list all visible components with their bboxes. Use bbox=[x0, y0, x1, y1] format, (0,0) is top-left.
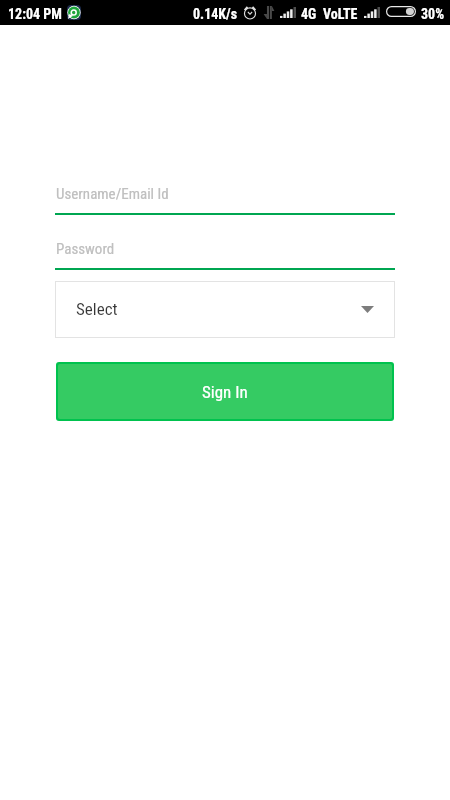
staticText: 4G bbox=[301, 6, 317, 22]
button[interactable]: Password bbox=[55, 235, 395, 270]
staticText: Sign In bbox=[202, 382, 248, 402]
staticText: 0.14K/s bbox=[193, 6, 238, 22]
button[interactable]: Select bbox=[55, 281, 395, 338]
staticText: 30% bbox=[421, 6, 445, 22]
staticText: Username/Email Id bbox=[56, 185, 169, 203]
other: WhatsApp notification bbox=[67, 5, 81, 20]
button[interactable]: Sign In bbox=[58, 364, 392, 419]
staticText: Password bbox=[56, 240, 115, 258]
staticText: VoLTE bbox=[323, 6, 358, 22]
staticText: 12:04 PM bbox=[8, 6, 62, 22]
staticText: Select bbox=[76, 299, 118, 319]
button[interactable]: Username/Email Id bbox=[55, 180, 395, 215]
